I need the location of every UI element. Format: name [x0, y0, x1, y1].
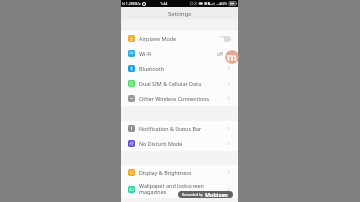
- button[interactable]: Airplane Mode: [121, 31, 238, 46]
- staticText: Settings: [168, 9, 192, 17]
- staticText: Display & Brightness: [139, 169, 226, 176]
- staticText: off: [217, 51, 223, 57]
- button[interactable]: Dual SIM & Cellular Data: [121, 76, 238, 91]
- button[interactable]: Wallpaper and lockscreen magazines: [121, 180, 238, 198]
- staticText: Dual SIM & Cellular Data: [139, 80, 226, 87]
- staticText: Wi-Fi: [139, 50, 217, 57]
- button[interactable]: Screen recorder: [225, 50, 239, 64]
- button[interactable]: No Disturb Mode: [121, 136, 238, 151]
- button[interactable]: Notification & Status Bar: [121, 121, 238, 136]
- staticText: Bluetooth: [139, 65, 226, 72]
- staticText: Mobizen: [205, 191, 228, 198]
- button[interactable]: Other Wireless Connections: [121, 91, 238, 106]
- staticText: Recorded by: [182, 192, 203, 197]
- staticText: Airplane Mode: [139, 35, 219, 42]
- staticText: Notification & Status Bar: [139, 125, 226, 132]
- button[interactable]: Display & Brightness: [121, 165, 238, 180]
- staticText: Wallpaper and lockscreen magazines: [139, 182, 226, 196]
- button[interactable]: Bluetooth: [121, 61, 238, 76]
- staticText: m: [227, 50, 237, 64]
- staticText: Other Wireless Connections: [139, 95, 226, 102]
- staticText: 1:44: [160, 1, 168, 6]
- staticText: No Disturb Mode: [139, 140, 226, 147]
- staticText: lıl 1.28KB/s: [122, 1, 141, 6]
- staticText: 24%: [220, 1, 228, 6]
- button[interactable]: Wi-Fi: [121, 46, 238, 61]
